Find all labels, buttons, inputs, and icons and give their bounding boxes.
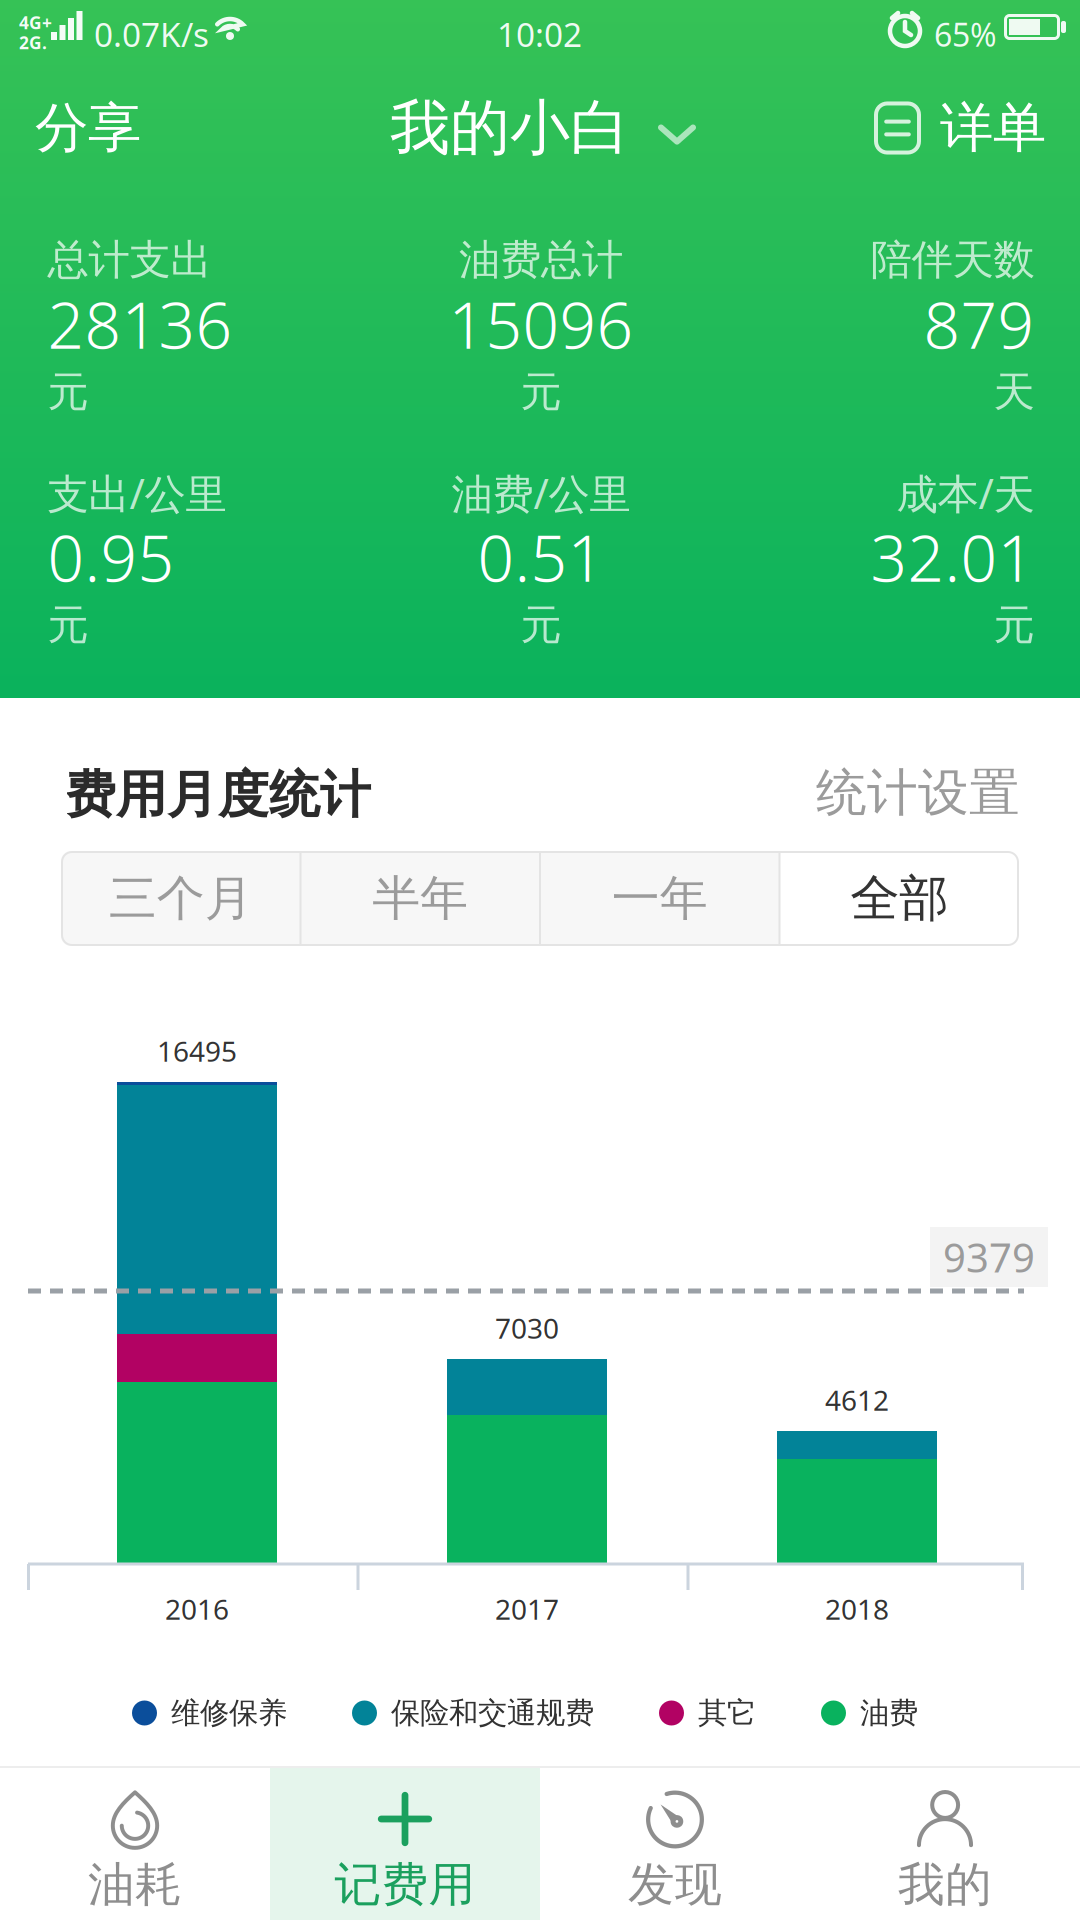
staticText: 统计设置 — [816, 762, 1020, 824]
staticText: 油费总计 — [459, 235, 623, 285]
staticText: 总计支出 — [47, 235, 211, 285]
staticText: 支出/公里 — [47, 466, 226, 520]
button[interactable]: 详单 — [874, 80, 1046, 176]
staticText: 4G+ — [19, 11, 52, 34]
staticText: 油费/公里 — [451, 466, 630, 520]
staticText: 0.95 — [47, 514, 174, 599]
staticText: 15096 — [448, 281, 633, 366]
staticText: 65% — [934, 13, 997, 55]
staticText: 维修保养 — [171, 1695, 287, 1731]
staticText: 我的 — [898, 1856, 992, 1913]
staticText: 全部 — [850, 868, 948, 929]
staticText: 保险和交通规费 — [391, 1695, 594, 1731]
staticText: 16495 — [157, 1032, 237, 1070]
staticText: 油耗 — [88, 1856, 182, 1913]
staticText: 油费 — [860, 1695, 918, 1731]
staticText: 32.01 — [870, 514, 1034, 599]
button[interactable]: 发现 — [540, 1768, 810, 1920]
staticText: 2G. — [19, 31, 47, 54]
staticText: 7030 — [495, 1309, 559, 1347]
button[interactable]: 油耗 — [0, 1768, 270, 1920]
staticText: 4612 — [825, 1381, 889, 1419]
staticText: 0.07K/s — [94, 12, 209, 56]
staticText: 2017 — [495, 1590, 559, 1628]
staticText: 一年 — [612, 869, 708, 928]
button[interactable]: 分享 — [18, 80, 158, 176]
staticText: 879 — [923, 281, 1034, 366]
button[interactable]: 三个月 — [61, 851, 300, 946]
staticText: 0.51 — [477, 514, 604, 599]
button[interactable]: 我的 — [810, 1768, 1080, 1920]
staticText: 成本/天 — [896, 466, 1034, 520]
staticText: 元 — [520, 367, 561, 417]
staticText: 元 — [993, 600, 1034, 650]
staticText: 2016 — [165, 1590, 229, 1628]
staticText: 10:02 — [497, 12, 582, 56]
staticText: 2018 — [825, 1590, 889, 1628]
staticText: 元 — [47, 367, 88, 417]
button[interactable]: 半年 — [300, 851, 540, 946]
staticText: 我的小白 — [390, 91, 630, 165]
button[interactable]: 我的小白 — [390, 80, 696, 176]
staticText: 其它 — [698, 1695, 756, 1731]
staticText: 三个月 — [109, 869, 253, 928]
staticText: 陪伴天数 — [870, 235, 1034, 285]
button[interactable]: 全部 — [779, 851, 1019, 946]
staticText: 28136 — [47, 281, 232, 366]
staticText: 详单 — [940, 95, 1046, 161]
button[interactable]: 统计设置 — [803, 765, 1033, 821]
staticText: 元 — [47, 600, 88, 650]
button[interactable]: 记费用 — [270, 1768, 540, 1920]
staticText: 半年 — [372, 869, 468, 928]
staticText: 天 — [993, 367, 1034, 417]
staticText: 元 — [520, 600, 561, 650]
button[interactable]: 一年 — [540, 851, 779, 946]
staticText: 记费用 — [334, 1856, 475, 1913]
staticText: 9379 — [943, 1230, 1035, 1283]
staticText: 分享 — [35, 95, 141, 161]
staticText: 费用月度统计 — [65, 764, 371, 826]
staticText: 发现 — [628, 1856, 722, 1913]
